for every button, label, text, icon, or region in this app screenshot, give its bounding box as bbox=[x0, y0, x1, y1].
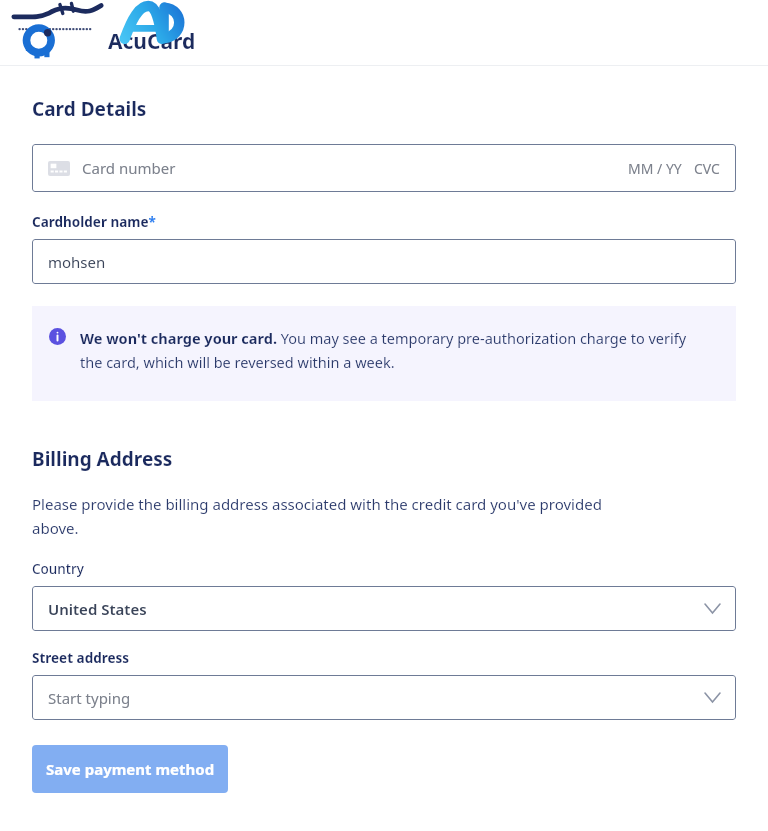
staticText: Billing Address bbox=[32, 446, 173, 472]
button[interactable]: mohsen bbox=[32, 239, 736, 284]
staticText: Please provide the billing address assoc… bbox=[32, 494, 602, 538]
staticText: Start typing bbox=[48, 688, 131, 708]
staticText: Street address bbox=[32, 649, 130, 667]
button[interactable]: AcuCard home bbox=[10, 0, 196, 56]
staticText: CVC bbox=[694, 159, 720, 178]
staticText: AcuCard bbox=[108, 27, 196, 56]
staticText: mohsen bbox=[48, 252, 106, 272]
staticText: Card number bbox=[82, 158, 176, 178]
staticText: Card Details bbox=[32, 96, 147, 122]
staticText: Cardholder name* bbox=[32, 213, 156, 231]
staticText: We won't charge your card. You may see a… bbox=[80, 328, 696, 372]
staticText: Country bbox=[32, 560, 84, 578]
button[interactable]: Street address bbox=[32, 675, 736, 720]
button[interactable]: Select country bbox=[32, 586, 736, 631]
staticText: United States bbox=[48, 599, 147, 619]
button[interactable]: Save payment method bbox=[32, 745, 228, 793]
staticText: MM / YY bbox=[628, 159, 682, 178]
staticText: Save payment method bbox=[46, 759, 215, 779]
button[interactable]: Card number, expiry and CVC bbox=[32, 144, 736, 192]
